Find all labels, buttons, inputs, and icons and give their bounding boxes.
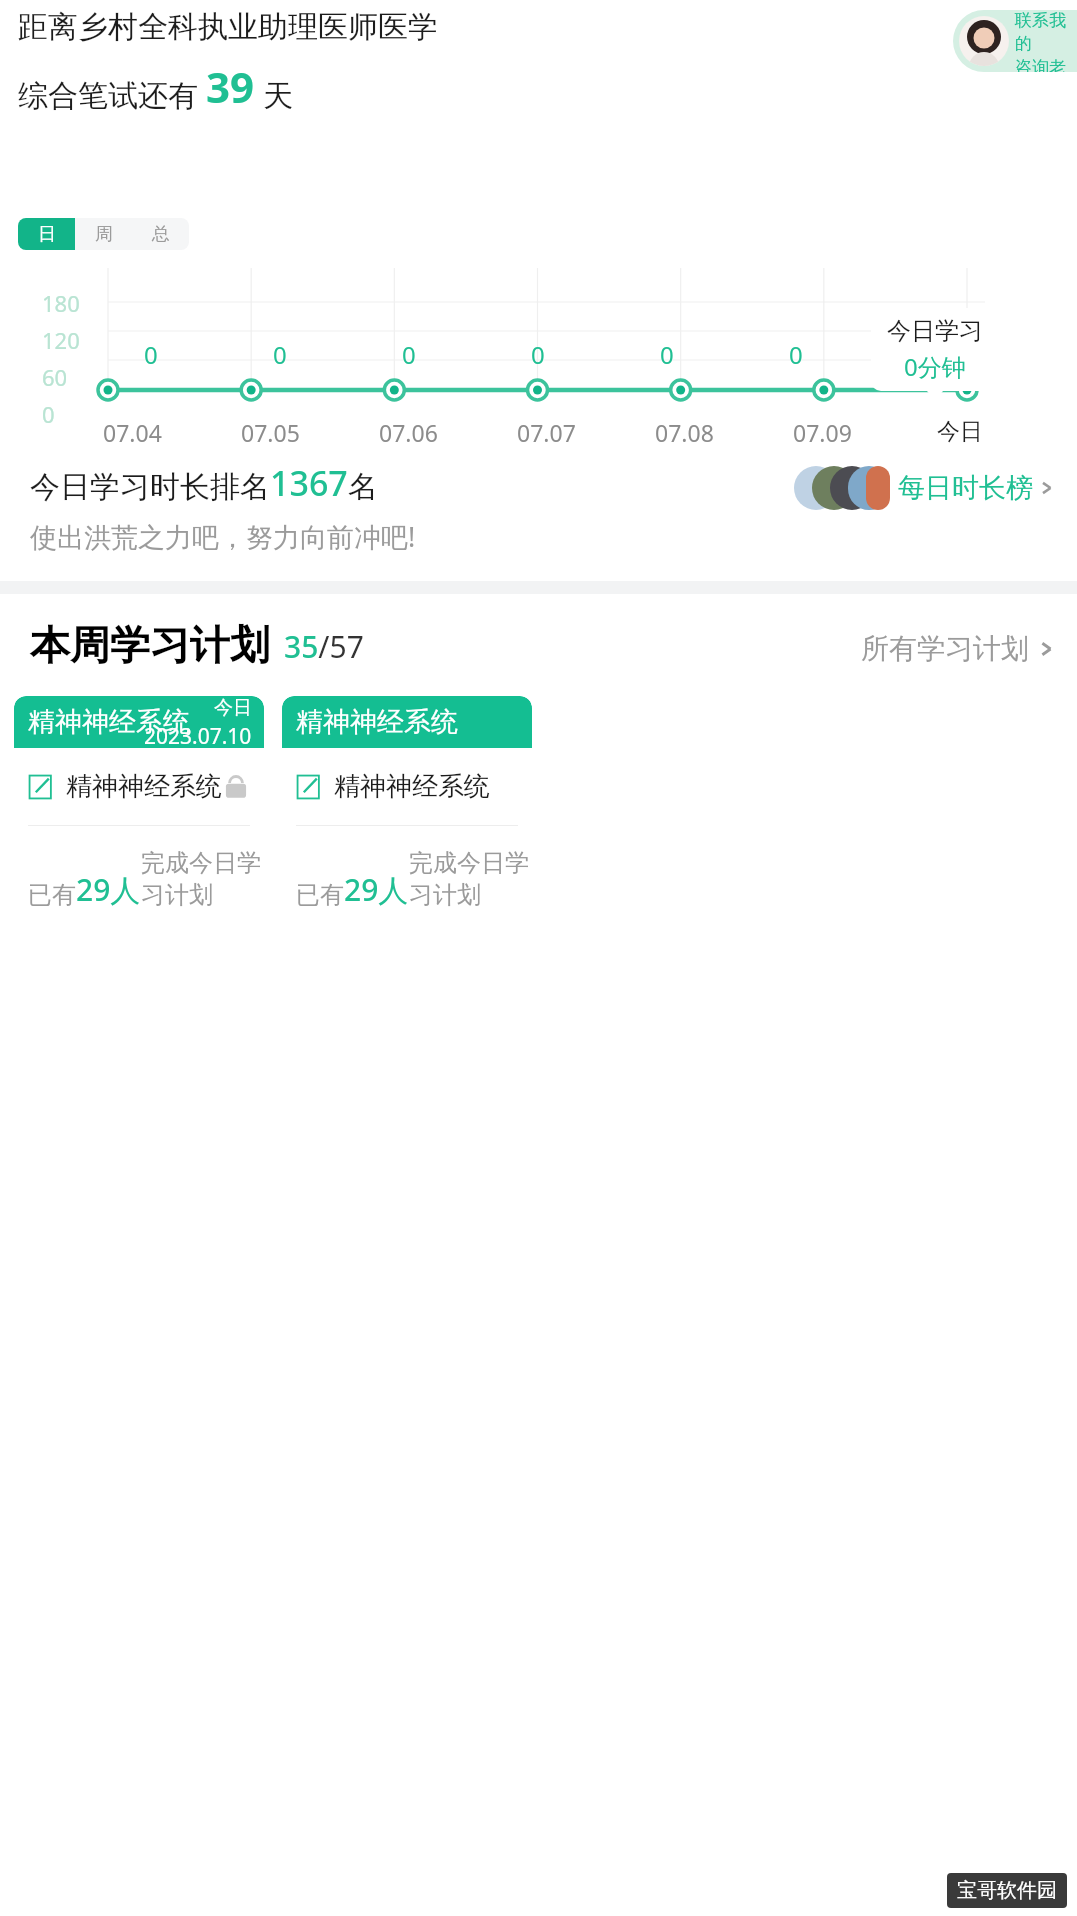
button[interactable]: 联系我的	[953, 10, 1077, 72]
staticText: 联系我的	[1015, 10, 1077, 54]
staticText: 总	[152, 223, 170, 246]
staticText: 0分钟	[904, 350, 966, 383]
button[interactable]: 日	[18, 218, 75, 250]
staticText: 已有	[28, 880, 76, 910]
staticText: 咨询老师	[1015, 57, 1077, 72]
staticText: 精神神经系统	[28, 705, 190, 739]
staticText: 29人	[344, 869, 409, 910]
staticText: 每日时长榜	[898, 471, 1033, 505]
staticText: 所有学习计划	[861, 631, 1029, 666]
other: Locked	[222, 772, 250, 802]
staticText: 已有	[296, 880, 344, 910]
staticText: 07.05	[241, 417, 300, 448]
other: Edit	[296, 774, 322, 800]
staticText: 2023.07.10	[144, 722, 252, 748]
staticText: 0	[273, 338, 287, 371]
staticText: 07.04	[103, 417, 162, 448]
staticText: 今日学习时长排名	[30, 468, 270, 506]
staticText: 0	[789, 338, 803, 371]
button[interactable]: 所有学习计划	[861, 631, 1055, 670]
staticText: 120	[42, 325, 80, 355]
staticText: 精神神经系统	[334, 770, 490, 803]
staticText: 39	[206, 58, 255, 115]
staticText: 日	[38, 223, 56, 246]
button[interactable]: 每日时长榜	[794, 466, 1055, 510]
staticText: 35/57	[284, 626, 364, 667]
staticText: 1367	[270, 460, 348, 506]
staticText: 名	[348, 468, 378, 506]
staticText: 07.09	[793, 417, 852, 448]
staticText: 完成今日学习计划	[409, 848, 532, 910]
other: Edit	[28, 774, 54, 800]
button[interactable]: 总	[132, 218, 189, 250]
staticText: 0	[144, 338, 158, 371]
staticText: 07.07	[517, 417, 576, 448]
staticText: 周	[95, 223, 113, 246]
staticText: 0	[531, 338, 545, 371]
staticText: 180	[42, 288, 80, 318]
staticText: 完成今日学习计划	[141, 848, 264, 910]
staticText: 今日学习	[887, 316, 983, 346]
staticText: 今日	[214, 696, 252, 720]
button[interactable]: 周	[75, 218, 132, 250]
button[interactable]: 精神神经系统	[282, 696, 532, 1216]
staticText: 精神神经系统	[296, 705, 458, 739]
staticText: 29人	[76, 869, 141, 910]
button[interactable]: 精神神经系统	[14, 696, 264, 1216]
staticText: 0	[660, 338, 674, 371]
staticText: 今日	[937, 417, 983, 446]
staticText: 距离乡村全科执业助理医师医学	[18, 8, 438, 46]
staticText: 07.06	[379, 417, 438, 448]
staticText: 本周学习计划	[30, 620, 270, 670]
staticText: 07.08	[655, 417, 714, 448]
staticText: 0	[402, 338, 416, 371]
staticText: 综合笔试还有	[18, 77, 198, 115]
staticText: 使出洪荒之力吧，努力向前冲吧!	[30, 518, 416, 555]
staticText: 精神神经系统	[66, 770, 222, 803]
staticText: 60	[42, 362, 68, 392]
staticText: 宝哥软件园	[957, 1878, 1057, 1903]
staticText: 0	[42, 399, 55, 429]
staticText: 天	[263, 77, 293, 115]
